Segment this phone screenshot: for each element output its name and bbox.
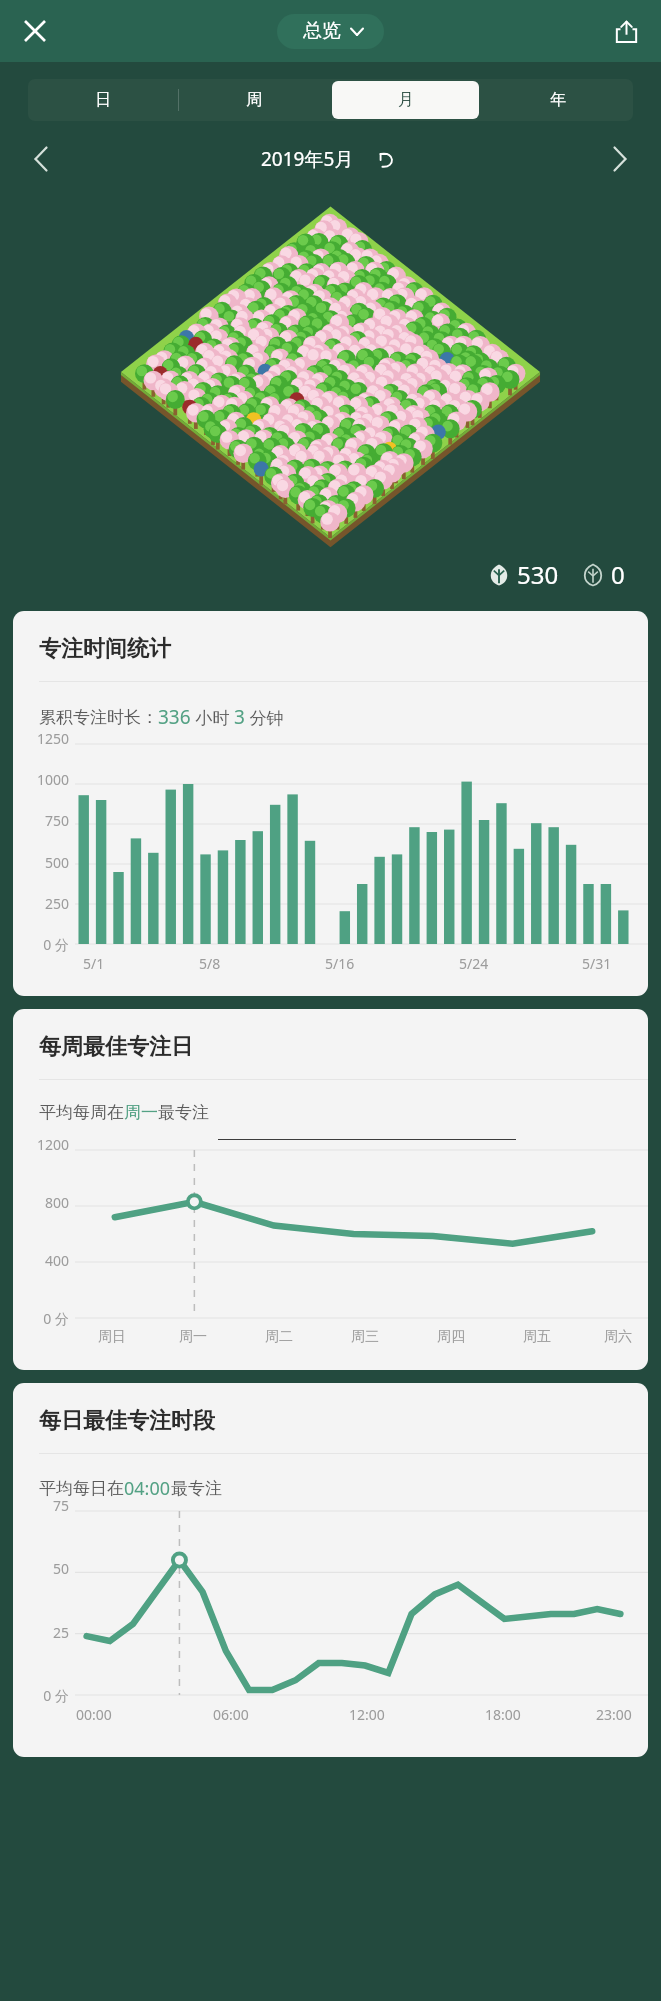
staticText: 总览 — [303, 19, 341, 43]
staticText: 周日 — [75, 1328, 103, 1346]
staticText: 1200 — [36, 1135, 69, 1154]
staticText: 周五 — [75, 1328, 103, 1346]
staticText: 周一 — [124, 1102, 158, 1123]
staticText: 周三 — [75, 1328, 103, 1346]
staticText: 530 — [517, 558, 559, 591]
staticText: 最专注 — [171, 1478, 222, 1499]
staticText: 周一 — [75, 1328, 103, 1346]
button[interactable]: 每日最佳专注时段 — [13, 1383, 648, 1757]
button[interactable]: Close — [12, 8, 58, 54]
button[interactable]: Reset to current month — [372, 145, 400, 173]
staticText: 12:00 — [349, 1705, 385, 1724]
staticText: 5/16 — [325, 954, 355, 973]
staticText: 75 — [52, 1496, 69, 1515]
staticText: 月 — [398, 90, 414, 110]
staticText: 年 — [550, 90, 566, 110]
staticText: 2019年5月 — [261, 146, 354, 172]
button[interactable]: 年 — [484, 81, 631, 119]
staticText: 5/1 — [75, 954, 97, 973]
staticText: 周六 — [604, 1328, 632, 1346]
staticText: 1000 — [36, 770, 69, 789]
staticText: 周三 — [351, 1328, 379, 1346]
staticText: 18:00 — [75, 1705, 111, 1724]
staticText: 0 分 — [43, 1309, 69, 1328]
staticText: 50 — [52, 1559, 69, 1578]
staticText: 0 分 — [43, 935, 69, 954]
staticText: 周五 — [523, 1328, 551, 1346]
staticText: 5/24 — [459, 954, 489, 973]
button[interactable]: Previous month — [20, 138, 62, 180]
staticText: 周 — [246, 90, 262, 110]
staticText: 分钟 — [245, 706, 284, 729]
staticText: 周二 — [75, 1328, 103, 1346]
staticText: 25 — [52, 1623, 69, 1642]
staticText: 5/16 — [75, 954, 105, 973]
button[interactable]: 每周最佳专注日 — [13, 1009, 648, 1370]
button[interactable]: Forest of focus trees — [0, 186, 661, 558]
staticText: 00:00 — [76, 1705, 112, 1724]
staticText: 5/1 — [83, 954, 105, 973]
staticText: 00:00 — [75, 1705, 111, 1724]
staticText: 18:00 — [485, 1705, 521, 1724]
staticText: 最专注 — [158, 1102, 209, 1123]
staticText: 5/31 — [75, 954, 105, 973]
staticText: 周一 — [179, 1328, 207, 1346]
staticText: 5/8 — [199, 954, 221, 973]
staticText: 23:00 — [596, 1705, 632, 1724]
staticText: 平均每日在 — [39, 1478, 124, 1499]
button[interactable]: 总览 — [277, 14, 384, 49]
staticText: 336 — [158, 704, 191, 730]
staticText: 累积专注时长： — [39, 707, 158, 728]
staticText: 周四 — [437, 1328, 465, 1346]
staticText: 400 — [44, 1251, 69, 1270]
staticText: 1250 — [36, 729, 69, 748]
button[interactable]: 周 — [181, 81, 327, 119]
staticText: 0 — [611, 558, 625, 591]
staticText: 3 — [234, 704, 245, 730]
staticText: 5/24 — [75, 954, 105, 973]
staticText: 5/31 — [582, 954, 612, 973]
staticText: 每日最佳专注时段 — [39, 1407, 215, 1435]
staticText: 专注时间统计 — [39, 635, 171, 663]
staticText: 06:00 — [75, 1705, 111, 1724]
staticText: 周四 — [75, 1328, 103, 1346]
staticText: 每周最佳专注日 — [39, 1033, 193, 1061]
staticText: 日 — [95, 90, 111, 110]
staticText: 小时 — [191, 706, 234, 729]
staticText: 250 — [44, 894, 69, 913]
staticText: 23:00 — [75, 1705, 111, 1724]
staticText: 800 — [44, 1193, 69, 1212]
staticText: 周日 — [98, 1328, 126, 1346]
staticText: 周二 — [265, 1328, 293, 1346]
button[interactable]: 日 — [30, 81, 176, 119]
staticText: 500 — [44, 853, 69, 872]
staticText: 04:00 — [124, 1476, 171, 1501]
button[interactable]: Next month — [599, 138, 641, 180]
button[interactable]: Share — [603, 8, 649, 54]
staticText: 0 分 — [43, 1686, 69, 1705]
staticText: 06:00 — [213, 1705, 249, 1724]
staticText: 周六 — [75, 1328, 103, 1346]
staticText: 平均每周在 — [39, 1102, 124, 1123]
button[interactable]: 专注时间统计 — [13, 611, 648, 996]
button[interactable]: 月 — [332, 81, 479, 119]
staticText: 750 — [44, 811, 69, 830]
staticText: 12:00 — [75, 1705, 111, 1724]
staticText: 5/8 — [75, 954, 97, 973]
